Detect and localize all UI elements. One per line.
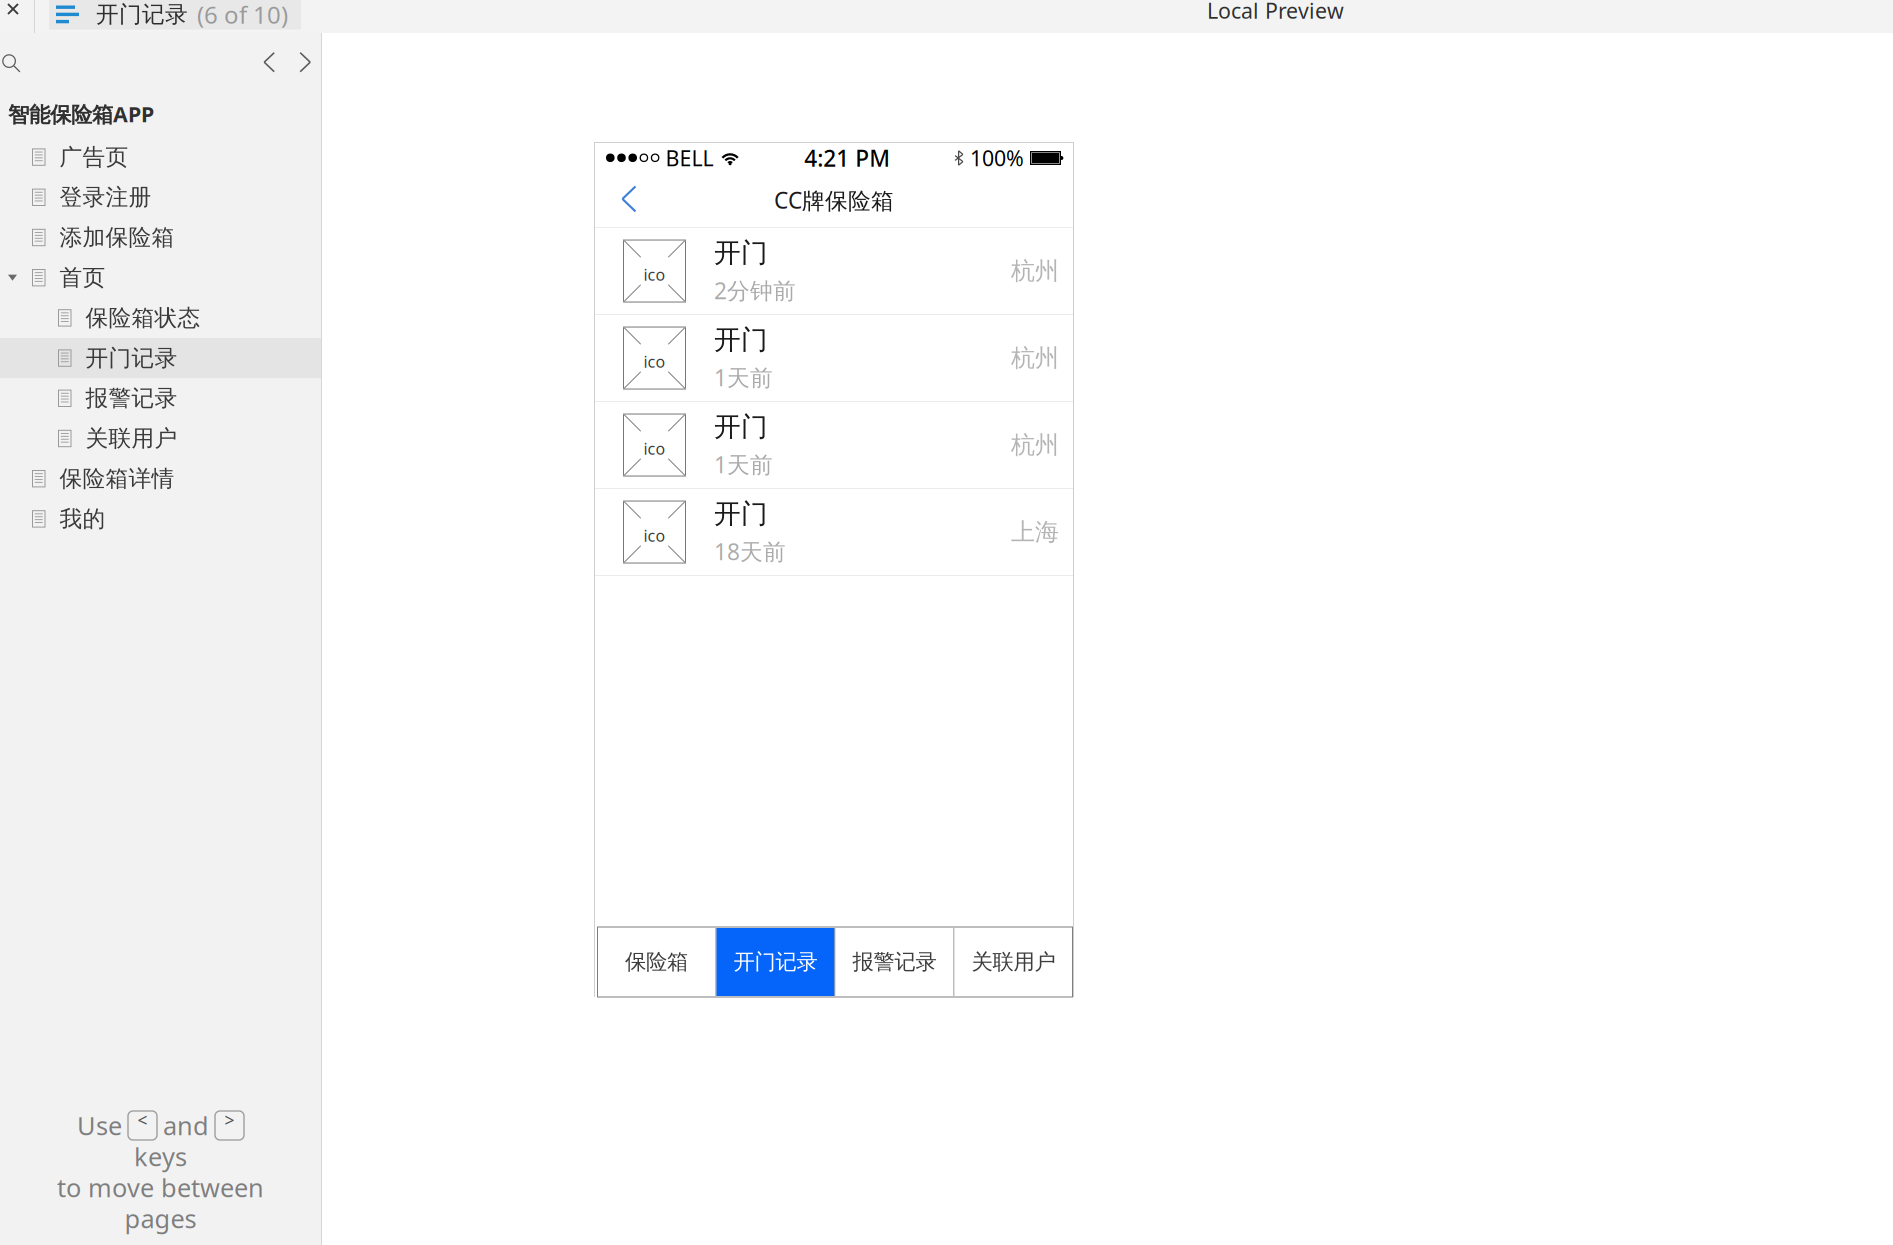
button[interactable]: ico [595, 489, 1073, 575]
button[interactable]: 保险箱状态 [0, 298, 321, 338]
button[interactable]: 开门记录 [716, 928, 834, 996]
staticText: 关联用户 [85, 425, 177, 452]
staticText: 登录注册 [59, 183, 151, 211]
button[interactable]: 开门记录 [49, 0, 301, 33]
staticText: 1天前 [714, 362, 773, 392]
staticText: 报警记录 [852, 949, 936, 975]
staticText: 开门记录 [733, 949, 817, 975]
staticText: 开门 [714, 411, 768, 443]
button[interactable]: Previous page [252, 46, 288, 80]
staticText: 智能保险箱APP [8, 100, 154, 128]
staticText: Local Preview [1207, 0, 1344, 25]
button[interactable]: 登录注册 [0, 177, 321, 217]
staticText: 开门记录 [96, 1, 188, 28]
staticText: 杭州 [1011, 256, 1059, 286]
staticText: ico [643, 438, 665, 459]
staticText: 4:21 PM [804, 143, 890, 173]
staticText: pages [124, 1202, 196, 1235]
staticText: keys [134, 1140, 187, 1173]
staticText: 杭州 [1011, 430, 1059, 460]
staticText: 报警记录 [85, 384, 177, 412]
button[interactable]: 关联用户 [0, 418, 321, 459]
button[interactable]: 报警记录 [0, 378, 321, 418]
button[interactable]: 报警记录 [835, 928, 953, 996]
staticText: 2分钟前 [714, 275, 796, 305]
staticText: 我的 [59, 505, 105, 533]
staticText: > [224, 1108, 234, 1131]
staticText: 添加保险箱 [59, 224, 174, 251]
button[interactable]: Close [0, 0, 34, 33]
staticText: 首页 [59, 264, 105, 292]
button[interactable]: Back [595, 176, 649, 224]
staticText: BELL [665, 144, 713, 172]
staticText: CC牌保险箱 [774, 185, 894, 215]
button[interactable]: 关联用户 [954, 928, 1072, 996]
staticText: 保险箱 [625, 949, 688, 975]
staticText: 18天前 [714, 536, 786, 566]
staticText: 开门 [714, 324, 768, 356]
button[interactable]: 广告页 [0, 137, 321, 177]
button[interactable]: 添加保险箱 [0, 217, 321, 258]
staticText: 100% [970, 144, 1024, 172]
staticText: 关联用户 [971, 949, 1055, 975]
staticText: to move between [57, 1171, 264, 1204]
button[interactable]: 首页 [0, 258, 321, 298]
staticText: 保险箱状态 [85, 304, 200, 332]
staticText: 开门 [714, 498, 768, 530]
button[interactable]: 我的 [0, 499, 321, 539]
staticText: ico [643, 525, 665, 546]
button[interactable]: ico [595, 228, 1073, 314]
staticText: 开门记录 [85, 344, 177, 372]
button[interactable]: 保险箱 [597, 928, 715, 996]
staticText: 杭州 [1011, 343, 1059, 373]
staticText: ico [643, 264, 665, 285]
staticText: 广告页 [59, 143, 128, 171]
staticText: (6 of 10) [197, 0, 288, 30]
button[interactable]: Next page [288, 46, 324, 80]
staticText: ico [643, 351, 665, 372]
staticText: 开门 [714, 237, 768, 269]
button[interactable]: 保险箱详情 [0, 459, 321, 499]
staticText: 保险箱详情 [59, 465, 174, 493]
staticText: and [163, 1109, 209, 1142]
staticText: < [137, 1108, 147, 1131]
staticText: 1天前 [714, 449, 773, 479]
staticText: 上海 [1011, 517, 1059, 547]
button[interactable]: 开门记录 [0, 338, 321, 378]
button[interactable]: ico [595, 402, 1073, 488]
button[interactable]: Search [1, 47, 33, 79]
button[interactable]: ico [595, 315, 1073, 401]
staticText: Use [77, 1109, 122, 1142]
